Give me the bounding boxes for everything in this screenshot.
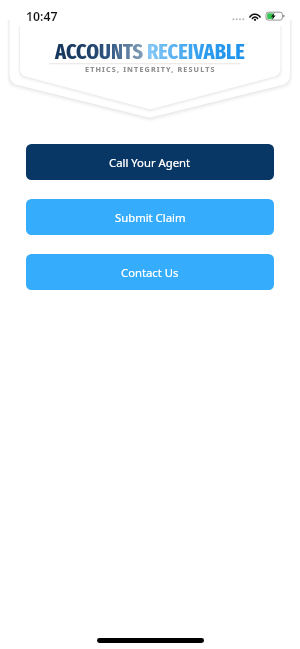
staticText: ACCOUNTS RECEIVABLE (55, 38, 245, 64)
staticText: Contact Us (121, 265, 179, 280)
staticText: Call Your Agent (109, 155, 191, 170)
button[interactable]: Contact Us (26, 254, 274, 290)
staticText: Submit Claim (115, 210, 186, 225)
staticText: 10:47 (26, 8, 58, 25)
staticText: ETHICS, INTEGRITY, RESULTS (85, 64, 216, 74)
button[interactable]: Submit Claim (26, 199, 274, 235)
button[interactable]: Call Your Agent (26, 144, 274, 180)
